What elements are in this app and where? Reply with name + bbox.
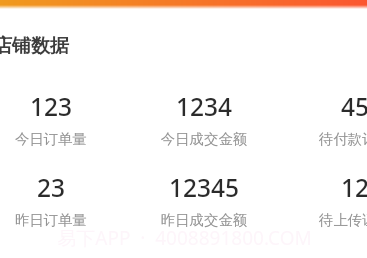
- staticText: 1234: [129, 90, 279, 123]
- staticText: 23: [0, 171, 126, 204]
- staticText: 昨日成交金额: [129, 211, 279, 229]
- staticText: 今日成交金额: [129, 130, 279, 148]
- staticText: 待付款订单: [280, 130, 367, 148]
- button[interactable]: 12345: [129, 171, 279, 239]
- staticText: 易下APP · 4008891800.COM: [1, 225, 367, 251]
- button[interactable]: 23: [0, 171, 126, 239]
- button[interactable]: 1234: [129, 90, 279, 158]
- staticText: 待上传证件: [280, 211, 367, 229]
- button[interactable]: 45: [280, 90, 367, 158]
- button[interactable]: 123: [0, 90, 126, 158]
- staticText: 12: [280, 171, 367, 204]
- staticText: 45: [280, 90, 367, 123]
- staticText: 今日订单量: [0, 130, 126, 148]
- staticText: 12345: [129, 171, 279, 204]
- staticText: 店铺数据: [0, 34, 69, 58]
- staticText: 123: [0, 90, 126, 123]
- staticText: 昨日订单量: [0, 211, 126, 229]
- button[interactable]: 12: [280, 171, 367, 239]
